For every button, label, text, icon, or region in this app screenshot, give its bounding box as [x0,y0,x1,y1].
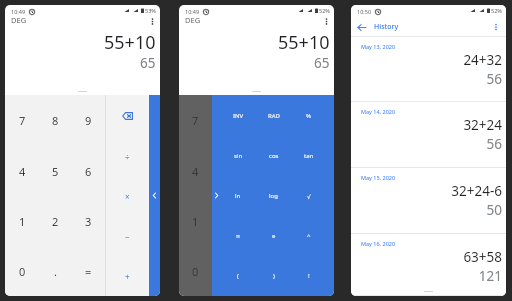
staticText: RAD [268,112,280,120]
staticText: May 15, 2020 [361,174,396,181]
staticText: . [54,264,57,279]
staticText: 56 [351,135,502,153]
staticText: 0 [19,264,26,279]
button[interactable]: Back [354,20,368,34]
staticText: DEG [185,15,201,25]
button[interactable]: 9 [72,95,105,146]
button[interactable]: cos [256,136,291,176]
staticText: 8 [52,113,59,128]
staticText: ! [308,272,310,280]
button[interactable]: = [72,246,105,296]
button[interactable]: + [106,256,149,296]
button[interactable]: Collapse scientific pad [212,95,221,296]
button[interactable]: − [106,216,149,256]
button[interactable]: × [106,176,149,216]
button[interactable]: ln [220,176,256,216]
staticText: May 14, 2020 [361,108,396,115]
staticText: cos [269,152,279,160]
staticText: 7 [19,113,26,128]
button[interactable]: ( [220,256,256,296]
button[interactable]: ÷ [106,136,149,176]
button[interactable]: ) [256,256,291,296]
button[interactable]: 5 [39,146,72,196]
staticText: 7 [192,113,199,128]
staticText: 9 [85,113,92,128]
button[interactable]: 6 [72,146,105,196]
button[interactable]: Expand scientific pad [149,95,160,296]
button[interactable]: π [220,216,256,256]
staticText: 32+24-6 [351,182,502,200]
button[interactable]: Delete [106,95,149,136]
staticText: = [85,264,92,279]
button[interactable]: May 13, 2020 [351,37,506,102]
button[interactable]: 8 [39,95,72,146]
staticText: 1 [19,214,26,229]
staticText: 53% [145,7,156,14]
staticText: 10:50 [357,8,372,15]
staticText: 56 [351,70,502,88]
staticText: 4 [19,164,26,179]
staticText: % [306,112,311,120]
staticText: 6 [85,164,92,179]
staticText: 10:49 [11,8,26,15]
button[interactable]: sin [220,136,256,176]
button[interactable]: INV [220,95,256,136]
staticText: e [272,232,276,240]
staticText: 4 [192,164,199,179]
button[interactable]: 0 [5,246,39,296]
staticText: sin [234,152,243,160]
staticText: 121 [351,267,502,285]
staticText: 24+32 [351,51,502,69]
button[interactable]: More options [322,17,331,26]
staticText: ( [237,272,239,280]
staticText: + [125,271,130,282]
staticText: ) [273,272,275,280]
button[interactable]: 2 [39,196,72,246]
button[interactable]: . [39,246,72,296]
staticText: 2 [52,214,59,229]
button[interactable]: log [256,176,291,216]
staticText: 55+10 [104,30,156,55]
staticText: 55+10 [278,30,330,55]
staticText: × [125,191,130,202]
staticText: 32+24 [351,116,502,134]
button[interactable]: May 16, 2020 [351,234,506,296]
button[interactable]: % [291,95,326,136]
staticText: − [125,231,130,242]
button[interactable]: 1 [5,196,39,246]
staticText: tan [304,152,314,160]
button[interactable]: May 15, 2020 [351,168,506,234]
staticText: π [236,232,240,240]
staticText: May 16, 2020 [361,240,396,247]
button[interactable]: 7 [5,95,39,146]
staticText: 10:49 [185,8,200,15]
button[interactable]: e [256,216,291,256]
button[interactable]: 3 [72,196,105,246]
staticText: 52% [491,7,502,14]
staticText: 3 [85,214,92,229]
staticText: ln [235,192,241,200]
button[interactable]: ! [291,256,326,296]
button[interactable]: ^ [291,216,326,256]
staticText: INV [233,112,244,120]
staticText: 65 [314,54,330,72]
staticText: 5 [52,164,59,179]
button[interactable]: RAD [256,95,291,136]
staticText: ^ [307,232,311,240]
staticText: 1 [192,214,199,229]
staticText: √ [307,193,311,200]
button[interactable]: May 14, 2020 [351,102,506,168]
staticText: log [269,192,278,200]
staticText: 65 [140,54,156,72]
button[interactable]: More options [148,17,157,26]
button[interactable]: √ [291,176,326,216]
staticText: 63+58 [351,248,502,266]
staticText: ÷ [125,151,130,162]
button[interactable]: 4 [5,146,39,196]
button[interactable]: tan [291,136,326,176]
staticText: DEG [11,15,27,25]
staticText: 0 [192,264,199,279]
staticText: History [374,22,399,32]
button[interactable]: More options [490,21,502,33]
staticText: 50 [351,201,502,219]
